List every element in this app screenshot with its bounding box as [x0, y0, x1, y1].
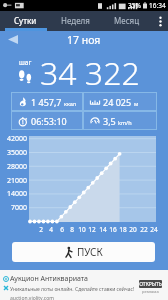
button[interactable]: Месяц: [101, 11, 152, 31]
staticText: реклама: [142, 289, 159, 294]
staticText: 22: [138, 225, 150, 234]
staticText: km/h: [118, 119, 132, 126]
staticText: 17 ноя: [67, 33, 101, 47]
staticText: 34 322: [40, 51, 140, 95]
staticText: 35%: [128, 1, 141, 10]
staticText: 24 025: [103, 96, 132, 108]
staticText: 7000: [2, 203, 27, 213]
staticText: 20: [127, 225, 139, 234]
staticText: 16: [107, 225, 119, 234]
button[interactable]: Ad information: [2, 275, 9, 282]
staticText: ккал: [64, 100, 77, 107]
staticText: 18: [117, 225, 129, 234]
staticText: 6: [56, 225, 68, 234]
button[interactable]: Previous day: [7, 33, 19, 45]
staticText: 28000: [2, 162, 27, 172]
staticText: 35000: [2, 148, 27, 158]
staticText: Месяц: [114, 15, 140, 26]
button[interactable]: Неделя: [50, 11, 101, 31]
staticText: Неделя: [61, 15, 90, 26]
staticText: Аукцион Антиквариата: [10, 274, 89, 284]
staticText: 12: [86, 225, 98, 234]
button[interactable]: Сутки: [0, 11, 50, 31]
staticText: 2: [35, 225, 47, 234]
staticText: 24: [148, 225, 160, 234]
staticText: 10: [76, 225, 88, 234]
staticText: 8: [66, 225, 78, 234]
button[interactable]: Close ad: [2, 284, 9, 291]
staticText: Сутки: [14, 15, 37, 26]
button[interactable]: ОТКРЫТЬ: [139, 280, 162, 288]
button[interactable]: More options: [152, 11, 168, 31]
staticText: 16:34: [149, 1, 166, 10]
staticText: 21000: [2, 176, 27, 186]
staticText: ПУСК: [77, 245, 103, 259]
staticText: 14: [97, 225, 109, 234]
staticText: шаг: [19, 58, 32, 67]
staticText: auction.violity.com: [10, 295, 54, 300]
button[interactable]: 24 025: [90, 92, 157, 111]
button[interactable]: ПУСК: [12, 242, 155, 262]
staticText: ОТКРЫТЬ: [139, 281, 162, 288]
button[interactable]: 3,5: [90, 111, 157, 130]
staticText: Уникальные лоты онлайн. Сделайте ставки …: [10, 286, 135, 293]
staticText: 1 457,7: [31, 96, 62, 108]
button[interactable]: 1 457,7: [18, 92, 83, 111]
staticText: 3,5: [103, 115, 116, 127]
staticText: 06:53:10: [31, 115, 67, 127]
staticText: м: [134, 100, 139, 107]
staticText: 4: [45, 225, 57, 234]
button[interactable]: 06:53:10: [18, 111, 83, 130]
staticText: 14000: [2, 189, 27, 199]
staticText: 42000: [2, 134, 27, 144]
